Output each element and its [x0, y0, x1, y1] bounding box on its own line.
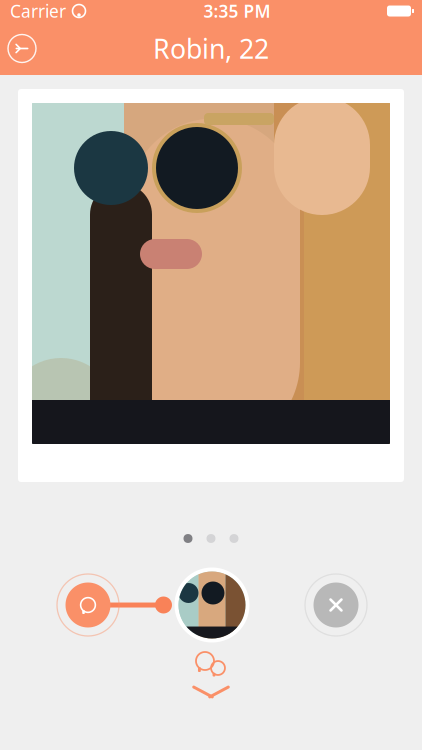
button[interactable]: Message	[55, 572, 121, 638]
button[interactable]: Show conversation	[171, 649, 251, 701]
button[interactable]: Photo of Robin	[18, 89, 404, 482]
staticText: Carrier	[10, 0, 66, 22]
staticText: Robin, 22	[153, 31, 269, 66]
button[interactable]: Robin profile photo	[174, 567, 249, 642]
button[interactable]: Dismiss	[303, 572, 369, 638]
button[interactable]: Back	[0, 26, 44, 70]
staticText: 3:35 PM	[203, 0, 270, 22]
